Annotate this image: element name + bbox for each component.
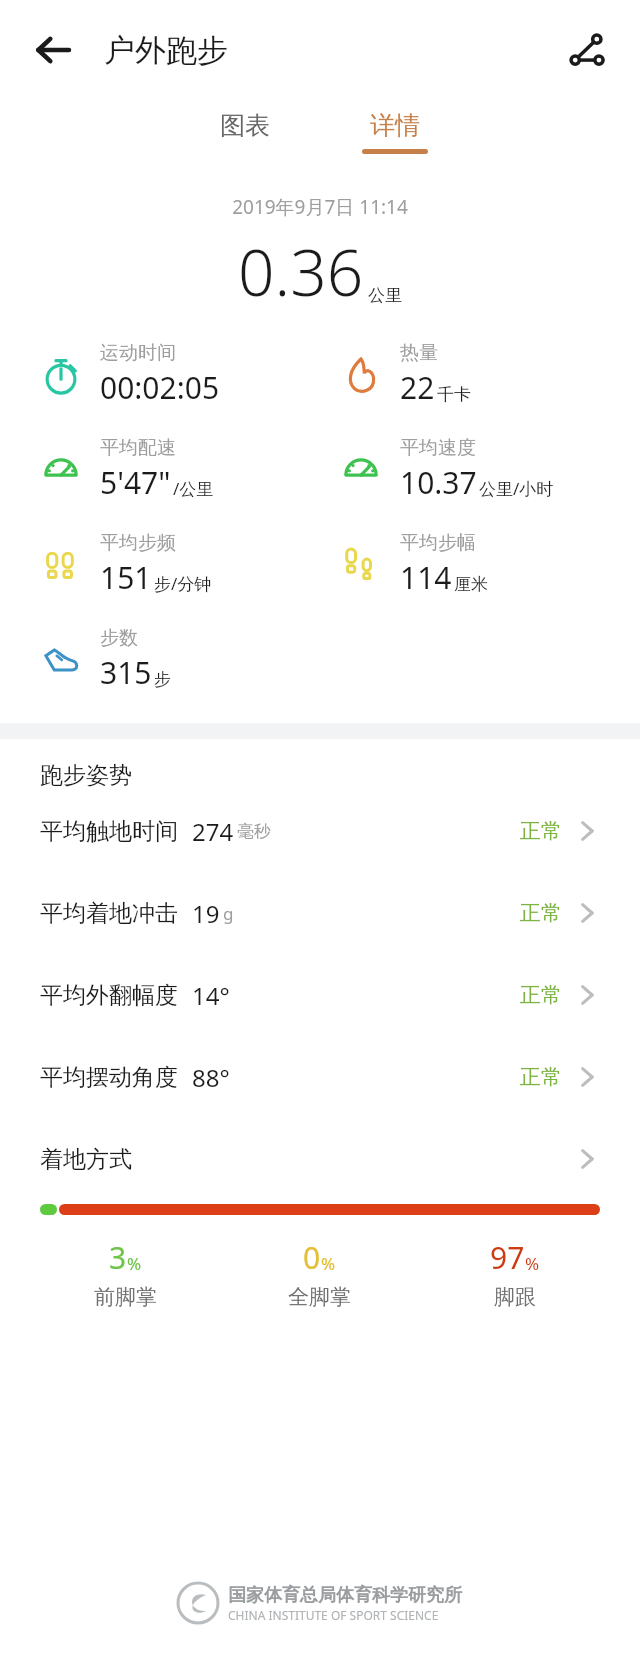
staticText: 88°	[192, 1061, 230, 1094]
button[interactable]: 平均速度	[336, 436, 640, 503]
button[interactable]: 平均触地时间	[0, 790, 640, 872]
staticText: 公里	[368, 285, 402, 306]
staticText: 详情	[370, 110, 420, 141]
button[interactable]: 平均步幅	[336, 531, 640, 598]
staticText: 步	[154, 669, 171, 690]
staticText: 19	[192, 897, 220, 930]
staticText: 5'47"	[100, 462, 171, 503]
button[interactable]: 着地方式	[0, 1118, 640, 1200]
button[interactable]: 平均外翻幅度	[0, 954, 640, 1036]
staticText: 151	[100, 557, 152, 598]
button[interactable]: 运动时间	[36, 341, 320, 408]
button[interactable]: 步数	[36, 626, 320, 693]
staticText: 3	[109, 1237, 127, 1278]
staticText: 97	[490, 1237, 525, 1278]
staticText: 运动时间	[100, 341, 176, 365]
staticText: 毫秒	[237, 821, 271, 842]
button[interactable]: 平均配速	[36, 436, 320, 503]
staticText: 平均步幅	[400, 531, 476, 555]
button[interactable]: 平均摆动角度	[0, 1036, 640, 1118]
staticText: 跑步姿势	[40, 761, 132, 790]
staticText: 平均步频	[100, 531, 176, 555]
staticText: 平均着地冲击	[40, 899, 178, 928]
staticText: 正常	[520, 1064, 562, 1090]
staticText: 前脚掌	[94, 1284, 157, 1310]
staticText: 平均外翻幅度	[40, 981, 178, 1010]
staticText: %	[321, 1252, 336, 1275]
staticText: 22	[400, 367, 435, 408]
staticText: 步数	[100, 626, 138, 650]
button[interactable]: 详情	[320, 100, 470, 164]
button[interactable]: 平均着地冲击	[0, 872, 640, 954]
staticText: 00:02:05	[100, 367, 220, 408]
staticText: %	[127, 1252, 142, 1275]
staticText: 图表	[220, 110, 270, 141]
button[interactable]: 图表	[170, 100, 320, 151]
staticText: g	[223, 902, 234, 925]
staticText: 正常	[520, 982, 562, 1008]
staticText: 千卡	[437, 384, 471, 405]
staticText: 平均配速	[100, 436, 176, 460]
staticText: 0	[303, 1237, 321, 1278]
staticText: 正常	[520, 900, 562, 926]
staticText: 厘米	[454, 574, 488, 595]
staticText: 0.36	[238, 228, 364, 315]
staticText: 全脚掌	[288, 1284, 351, 1310]
staticText: 着地方式	[40, 1145, 132, 1174]
staticText: 274	[192, 815, 234, 848]
staticText: /公里	[173, 477, 214, 500]
staticText: 脚跟	[494, 1284, 536, 1310]
staticText: 热量	[400, 341, 438, 365]
staticText: 14°	[192, 979, 230, 1012]
staticText: 平均摆动角度	[40, 1063, 178, 1092]
staticText: %	[525, 1252, 540, 1275]
staticText: 2019年9月7日 11:14	[0, 194, 640, 220]
button[interactable]: Back	[26, 24, 78, 76]
staticText: 公里/小时	[479, 477, 554, 500]
staticText: 114	[400, 557, 452, 598]
staticText: 315	[100, 652, 152, 693]
button[interactable]: Share	[558, 22, 614, 78]
button[interactable]: 热量	[336, 341, 640, 408]
button[interactable]: 平均步频	[36, 531, 320, 598]
staticText: CHINA INSTITUTE OF SPORT SCIENCE	[228, 1607, 439, 1623]
staticText: 平均速度	[400, 436, 476, 460]
staticText: 正常	[520, 818, 562, 844]
staticText: 户外跑步	[104, 31, 228, 70]
staticText: 国家体育总局体育科学研究所	[228, 1584, 462, 1607]
staticText: 平均触地时间	[40, 817, 178, 846]
staticText: 10.37	[400, 462, 477, 503]
staticText: 步/分钟	[154, 572, 212, 595]
